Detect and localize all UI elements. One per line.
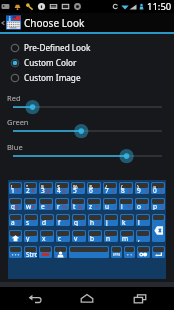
button[interactable]: e [39, 198, 53, 210]
staticText: & [78, 203, 83, 210]
staticText: a [11, 218, 15, 226]
other: Up [1, 21, 5, 25]
button[interactable]: § [39, 182, 53, 194]
staticText: f [58, 218, 61, 226]
button[interactable]: ) [135, 182, 149, 194]
staticText: [ [129, 187, 131, 194]
staticText: & [62, 187, 67, 194]
staticText: 5 [73, 186, 77, 194]
button[interactable]: = [151, 182, 165, 194]
button[interactable]: back [152, 214, 165, 242]
button[interactable]: p [151, 198, 165, 210]
button[interactable]: Custom Color [0, 55, 174, 70]
staticText: - [113, 203, 115, 210]
button[interactable]: dots2 [124, 246, 135, 258]
staticText: 3 [41, 186, 45, 194]
button[interactable]: dd [137, 246, 150, 258]
button[interactable]: / [103, 182, 117, 194]
staticText: " [26, 183, 29, 190]
button[interactable]: Red [0, 92, 174, 117]
button[interactable]: b [88, 230, 102, 242]
button[interactable]: k [120, 214, 134, 226]
button[interactable]: a [9, 214, 22, 226]
staticText: ( [145, 203, 147, 210]
button[interactable]: " [24, 182, 37, 194]
button[interactable]: t [71, 198, 85, 210]
button[interactable]: Back [17, 287, 53, 310]
staticText: i [121, 202, 123, 210]
button[interactable]: ! [9, 182, 22, 194]
button[interactable]: m [120, 230, 134, 242]
button[interactable]: q [9, 198, 22, 210]
staticText: g [74, 218, 78, 226]
staticText: c [58, 234, 62, 242]
staticText: k [122, 218, 126, 226]
button[interactable]: enter [152, 246, 165, 258]
button[interactable]: Custom Image [0, 70, 174, 85]
button[interactable]: Home [69, 287, 105, 310]
button[interactable]: i [119, 198, 133, 210]
staticText: Custom Color [24, 57, 77, 68]
staticText: m [122, 234, 129, 242]
button[interactable]: $ [55, 182, 69, 194]
staticText: q [11, 202, 15, 210]
button[interactable]: n [104, 230, 118, 242]
button[interactable]: person [54, 246, 67, 258]
button[interactable]: w [24, 198, 37, 210]
button[interactable] [69, 246, 109, 258]
staticText: y [26, 234, 30, 242]
staticText: d [42, 218, 46, 226]
button[interactable]: l [136, 214, 150, 226]
staticText: = [153, 183, 157, 190]
staticText: : [66, 219, 68, 226]
button[interactable]: Strg [24, 246, 37, 258]
staticText: ! [18, 219, 20, 226]
staticText: % [62, 203, 67, 210]
button[interactable]: d [40, 214, 54, 226]
staticText: ; [82, 219, 84, 226]
staticText: 11:50 [147, 0, 172, 13]
button[interactable]: f [56, 214, 70, 226]
button[interactable]: shift [9, 230, 22, 242]
button[interactable]: Recents [122, 287, 158, 310]
button[interactable]: c [56, 230, 70, 242]
staticText: w [26, 202, 32, 210]
button[interactable]: y [24, 230, 38, 242]
staticText: s [26, 218, 30, 226]
staticText: Red [7, 93, 21, 103]
button[interactable]: g [72, 214, 86, 226]
staticText: * [16, 187, 20, 194]
staticText: z [89, 202, 93, 210]
button[interactable]: % [71, 182, 85, 194]
staticText: € [47, 203, 51, 210]
button[interactable]: h [88, 214, 102, 226]
button[interactable]: Blue [0, 141, 174, 166]
staticText: ' [50, 219, 52, 226]
button[interactable]: r [55, 198, 69, 210]
button[interactable]: s [24, 214, 38, 226]
button[interactable]: , [136, 230, 150, 242]
staticText: t [73, 202, 76, 210]
button[interactable]: z [87, 198, 101, 210]
button[interactable]: x [40, 230, 54, 242]
button[interactable]: Up [0, 13, 174, 32]
button[interactable]: kbd [111, 246, 122, 258]
button[interactable]: ( [119, 182, 133, 194]
staticText: @ [14, 203, 20, 210]
button[interactable]: u [103, 198, 117, 210]
staticText: r [57, 202, 60, 210]
button[interactable]: & [87, 182, 101, 194]
staticText: l [138, 218, 140, 226]
other: back [152, 219, 165, 242]
button[interactable]: v [72, 230, 86, 242]
staticText: h [90, 218, 95, 226]
button[interactable]: alt [39, 246, 52, 258]
button[interactable]: Green [0, 116, 174, 141]
staticText: 8 [121, 186, 125, 194]
button[interactable]: o [135, 198, 149, 210]
button[interactable]: dots [9, 246, 22, 258]
button[interactable]: j [104, 214, 118, 226]
staticText: $ [57, 183, 61, 190]
button[interactable]: Pre-Defined Look [0, 40, 174, 55]
staticText: b [90, 234, 94, 242]
